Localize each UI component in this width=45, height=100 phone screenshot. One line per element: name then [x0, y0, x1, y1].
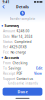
staticText: Completed — [14, 39, 31, 44]
staticText: Funds arrive instantly — [7, 81, 37, 85]
staticText: Details — [16, 4, 29, 9]
staticText: Amount — [3, 29, 15, 33]
staticText: Transfer complete — [9, 17, 35, 21]
staticText: 4K29-D1XB — [9, 45, 26, 49]
staticText: Mar 14, 2024 — [11, 34, 32, 39]
button[interactable]: Done — [3, 88, 42, 96]
staticText: Summary — [4, 23, 19, 28]
staticText: PDF — [16, 71, 22, 76]
staticText: Fee — [3, 50, 9, 54]
staticText: Checking — [12, 61, 27, 65]
staticText: Edit — [36, 66, 42, 70]
staticText: No charge — [10, 50, 26, 54]
staticText: Date — [3, 34, 10, 39]
staticText: View — [34, 71, 42, 76]
staticText: Ref — [3, 45, 8, 49]
staticText: Support — [3, 77, 15, 81]
staticText: From — [3, 61, 11, 65]
staticText: Savings — [8, 66, 21, 70]
staticText: 9:41 — [3, 0, 10, 4]
staticText: $248.00 — [16, 29, 29, 33]
staticText: Accounts — [4, 55, 19, 60]
staticText: To — [3, 66, 7, 70]
staticText: $ — [21, 11, 23, 16]
staticText: Contact us — [16, 77, 33, 81]
button[interactable]: Back — [1, 4, 6, 9]
staticText: Done — [17, 89, 27, 94]
staticText: Status — [3, 39, 13, 44]
staticText: Receipt — [3, 71, 15, 76]
